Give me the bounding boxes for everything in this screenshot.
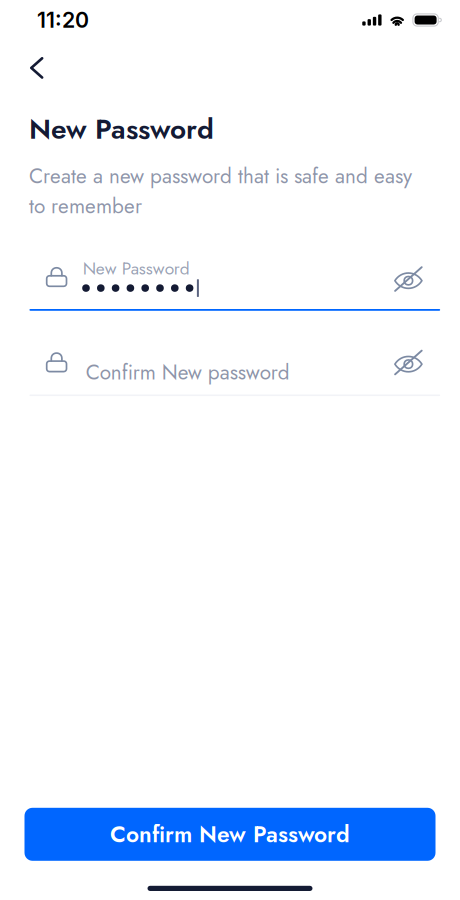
button[interactable]: Show confirm password: [387, 343, 430, 382]
staticText: Confirm New password: [86, 357, 290, 387]
staticText: 11:20: [37, 7, 89, 33]
button[interactable]: Hide password: [387, 259, 430, 299]
staticText: New Password: [83, 256, 190, 281]
staticText: New Password: [29, 109, 214, 149]
staticText: Create a new password that is safe and e…: [29, 161, 412, 221]
button[interactable]: Back: [0, 49, 59, 87]
button[interactable]: Confirm New Password: [24, 808, 435, 861]
staticText: Confirm New Password: [110, 818, 350, 851]
